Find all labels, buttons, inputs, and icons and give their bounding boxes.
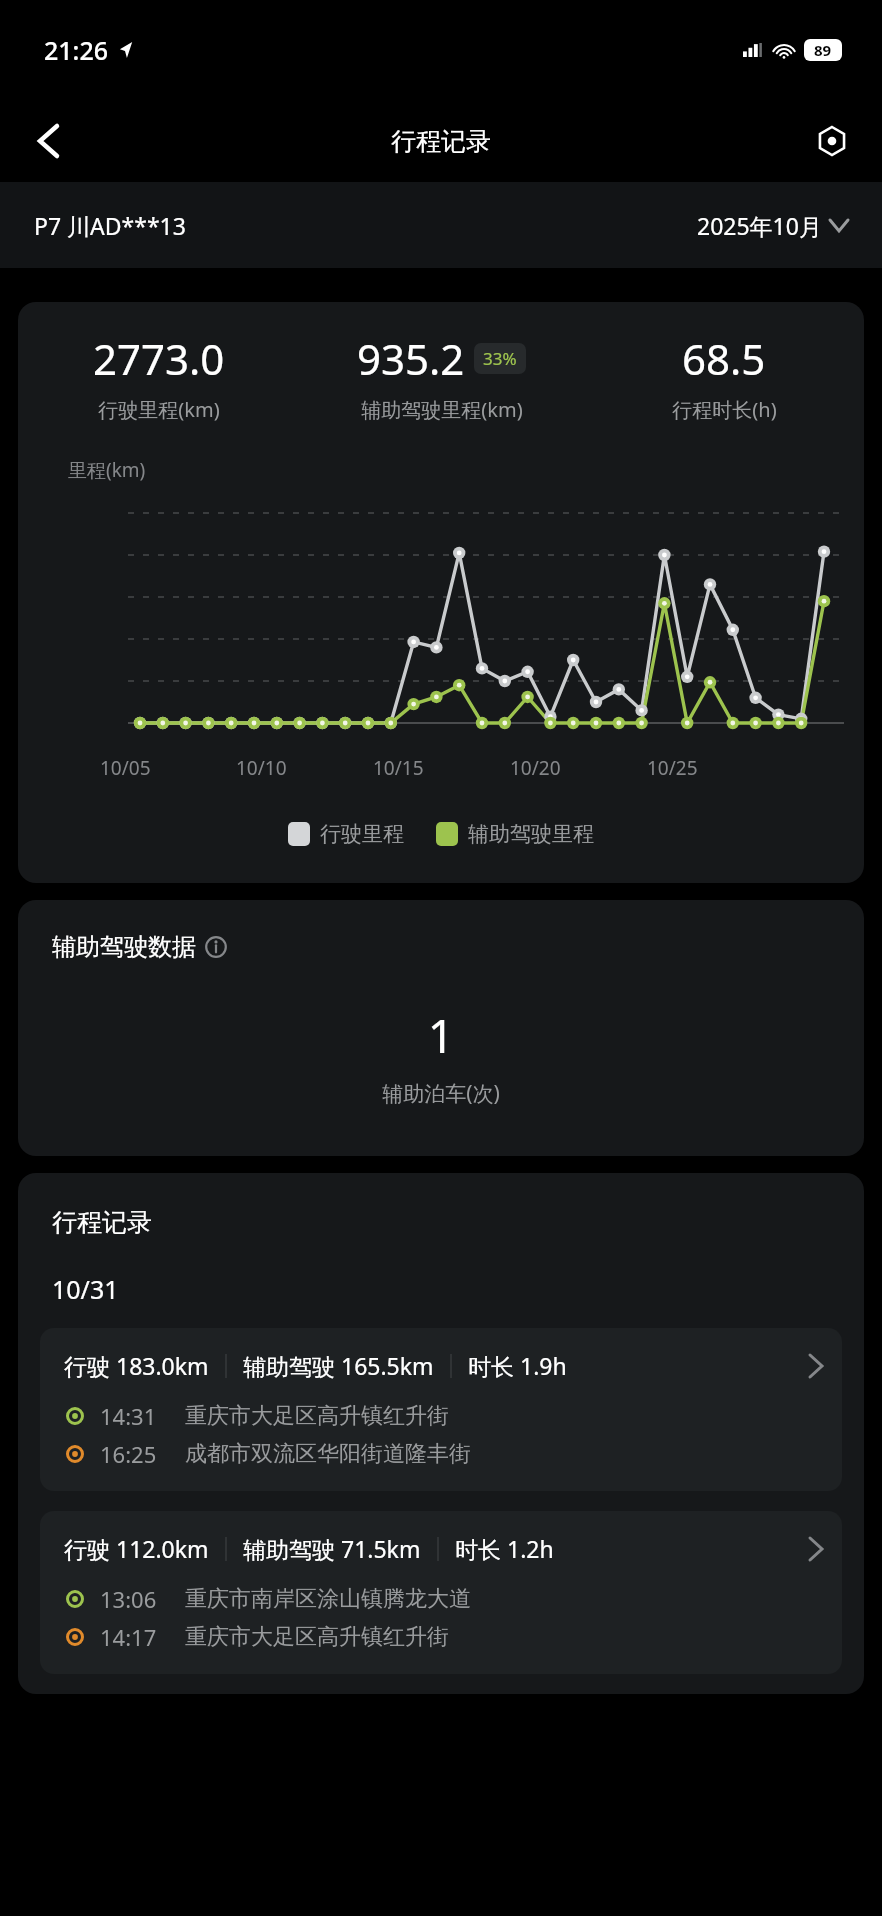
button[interactable]: Settings (804, 113, 860, 169)
staticText: 33% (483, 347, 517, 370)
staticText: 行驶 183.0km (64, 1350, 209, 1381)
staticText: 10/15 (373, 755, 424, 781)
staticText: 2025年10月 (697, 210, 822, 241)
button[interactable]: 行驶 183.0km (40, 1328, 842, 1491)
staticText: 重庆市南岸区涂山镇腾龙大道 (185, 1585, 471, 1613)
button[interactable]: P7 川AD***13 (34, 210, 186, 241)
staticText: 辅助驾驶里程 (468, 821, 594, 847)
staticText: 89 (814, 40, 832, 60)
staticText: 1 (18, 1004, 864, 1067)
button[interactable]: Info (204, 935, 228, 959)
staticText: 10/05 (100, 755, 151, 781)
staticText: 10/25 (647, 755, 698, 781)
staticText: 行程时长(h) (672, 396, 777, 423)
staticText: 重庆市大足区高升镇红升街 (185, 1623, 449, 1651)
staticText: 68.5 (682, 330, 766, 387)
staticText: 里程(km) (68, 457, 146, 483)
staticText: 10/31 (52, 1272, 119, 1306)
staticText: P7 川AD***13 (34, 210, 186, 241)
staticText: 重庆市大足区高升镇红升街 (185, 1402, 449, 1430)
staticText: 10/10 (236, 755, 287, 781)
staticText: 成都市双流区华阳街道隆丰街 (185, 1440, 471, 1468)
staticText: 21:26 (44, 33, 109, 67)
staticText: 行驶里程 (320, 821, 404, 847)
staticText: 14:31 (100, 1401, 157, 1431)
staticText: 16:25 (100, 1439, 157, 1469)
staticText: 辅助驾驶 71.5km (243, 1533, 421, 1564)
staticText: 行驶 112.0km (64, 1533, 209, 1564)
staticText: 13:06 (100, 1584, 157, 1614)
staticText: 14:17 (100, 1622, 157, 1652)
button[interactable]: Back (18, 111, 78, 171)
staticText: 时长 1.9h (468, 1350, 567, 1381)
button[interactable]: 2025年10月 (697, 210, 848, 241)
staticText: 935.2 (357, 330, 465, 387)
staticText: 时长 1.2h (455, 1533, 554, 1564)
staticText: 10/20 (510, 755, 561, 781)
staticText: 辅助驾驶 165.5km (243, 1350, 434, 1381)
staticText: 2773.0 (93, 330, 225, 387)
staticText: 行驶里程(km) (98, 396, 220, 423)
staticText: 辅助驾驶里程(km) (361, 396, 523, 423)
staticText: 辅助泊车(次) (18, 1079, 864, 1108)
staticText: 辅助驾驶数据 (52, 932, 196, 962)
button[interactable]: 行驶 112.0km (40, 1511, 842, 1674)
staticText: 行程记录 (52, 1207, 152, 1238)
staticText: 行程记录 (391, 126, 491, 157)
